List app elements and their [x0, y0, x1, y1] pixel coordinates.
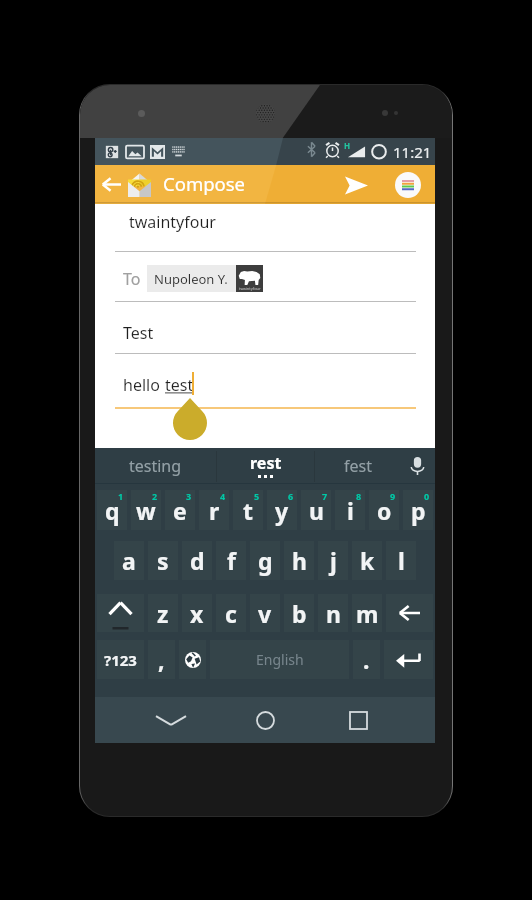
button[interactable]: l [386, 541, 416, 580]
button[interactable]: d [182, 541, 212, 580]
button[interactable]: k [352, 541, 382, 580]
button[interactable]: j [318, 541, 348, 580]
button[interactable] [97, 594, 144, 632]
button[interactable]: fest [315, 448, 400, 484]
staticText: g [258, 545, 273, 576]
staticText: n [326, 598, 341, 629]
button[interactable]: r [199, 490, 229, 530]
staticText: 8 [356, 490, 362, 502]
button[interactable]: p [403, 490, 433, 530]
staticText: w [136, 495, 156, 526]
button[interactable]: . [353, 640, 380, 679]
button[interactable]: z [148, 594, 178, 632]
staticText: d [190, 545, 205, 576]
staticText: u [309, 495, 324, 526]
staticText: English [256, 650, 304, 669]
staticText: l [398, 545, 405, 576]
button[interactable]: Back [95, 165, 128, 204]
staticText: r [209, 495, 220, 526]
button[interactable]: Nupoleon Y. [147, 265, 263, 292]
staticText: 4 [220, 490, 226, 502]
button[interactable]: English [210, 640, 349, 679]
button[interactable]: f [216, 541, 246, 580]
button[interactable]: i [335, 490, 365, 530]
staticText: 6 [288, 490, 294, 502]
button[interactable] [179, 640, 206, 679]
staticText: b [292, 598, 307, 629]
button[interactable]: b [284, 594, 314, 632]
staticText: h [292, 545, 307, 576]
staticText: rest [250, 452, 282, 474]
staticText: f [227, 545, 236, 576]
staticText: 0 [424, 490, 430, 502]
staticText: twaintyfour [239, 286, 261, 291]
staticText: t [243, 495, 253, 526]
staticText: ?123 [104, 650, 137, 670]
button[interactable]: h [284, 541, 314, 580]
staticText: twaintyfour [129, 211, 216, 233]
button[interactable]: e [165, 490, 195, 530]
staticText: c [225, 598, 237, 629]
button[interactable] [384, 640, 433, 679]
button[interactable]: y [267, 490, 297, 530]
staticText: o [377, 495, 392, 526]
button[interactable]: v [250, 594, 280, 632]
button[interactable]: , [148, 640, 175, 679]
staticText: Compose [163, 171, 246, 196]
staticText: test [165, 374, 194, 396]
button[interactable]: x [182, 594, 212, 632]
button[interactable]: c [216, 594, 246, 632]
button[interactable]: testing [95, 448, 216, 484]
staticText: y [275, 495, 289, 526]
staticText: v [258, 598, 272, 629]
staticText: s [157, 545, 169, 576]
staticText: . [363, 644, 370, 675]
staticText: i [347, 495, 354, 526]
staticText: 3 [186, 490, 192, 502]
staticText: p [411, 495, 426, 526]
staticText: 11:21 [393, 142, 432, 162]
staticText: 7 [322, 490, 328, 502]
staticText: To [123, 268, 141, 290]
button[interactable]: Account [388, 165, 427, 204]
staticText: hello [123, 374, 165, 396]
staticText: 1 [118, 490, 124, 502]
staticText: j [330, 545, 337, 576]
staticText: m [356, 598, 379, 629]
button[interactable] [386, 594, 433, 632]
staticText: q [105, 495, 120, 526]
button[interactable]: w [131, 490, 161, 530]
staticText: z [157, 598, 169, 629]
button[interactable]: t [233, 490, 263, 530]
button[interactable]: Home [235, 700, 295, 740]
button[interactable]: Voice input [400, 448, 435, 484]
staticText: k [360, 545, 375, 576]
button[interactable]: u [301, 490, 331, 530]
button[interactable]: s [148, 541, 178, 580]
button[interactable]: q [97, 490, 127, 530]
staticText: a [122, 545, 136, 576]
button[interactable]: ?123 [97, 640, 144, 679]
staticText: 5 [254, 490, 260, 502]
button[interactable]: Recents [328, 700, 388, 740]
button[interactable]: a [114, 541, 144, 580]
staticText: 9 [390, 490, 396, 502]
staticText: fest [344, 455, 372, 477]
button[interactable]: o [369, 490, 399, 530]
button[interactable]: g [250, 541, 280, 580]
button[interactable]: m [352, 594, 382, 632]
staticText: Nupoleon Y. [154, 270, 228, 288]
staticText: , [158, 644, 165, 675]
button[interactable]: rest [217, 448, 314, 484]
staticText: Test [123, 322, 154, 344]
button[interactable]: n [318, 594, 348, 632]
staticText: e [173, 495, 187, 526]
staticText: 2 [152, 490, 158, 502]
staticText: H [344, 140, 351, 151]
staticText: testing [129, 455, 182, 477]
button[interactable]: Hide keyboard [141, 700, 201, 740]
staticText: x [190, 598, 204, 629]
button[interactable]: Send [334, 165, 378, 204]
